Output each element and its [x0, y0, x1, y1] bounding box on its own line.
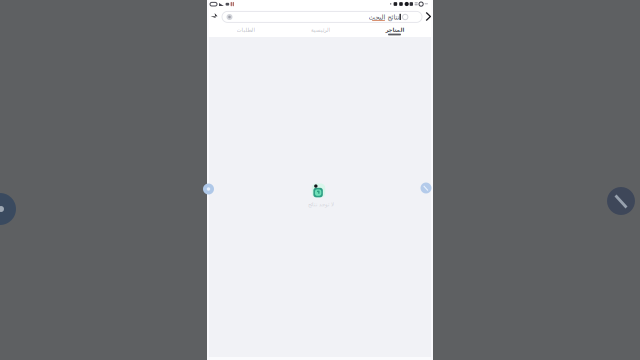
- staticText: الرئيسية: [310, 27, 329, 33]
- button[interactable]: نتائج البحث: [222, 11, 422, 22]
- button[interactable]: Next: [607, 187, 635, 215]
- button[interactable]: Back: [210, 11, 219, 20]
- staticText: الطلبات: [236, 27, 254, 33]
- staticText: نتائج البحث: [368, 13, 399, 21]
- staticText: لا توجد نتائج: [307, 201, 333, 208]
- button[interactable]: Forward: [425, 11, 432, 22]
- staticText: المتاجر: [385, 27, 404, 33]
- button[interactable]: Scroll right: [420, 182, 431, 193]
- button[interactable]: الطلبات: [218, 24, 272, 37]
- button[interactable]: Scroll left: [203, 183, 214, 194]
- button[interactable]: Previous: [0, 193, 16, 225]
- button[interactable]: المتاجر: [367, 24, 421, 37]
- button[interactable]: الرئيسية: [293, 24, 347, 37]
